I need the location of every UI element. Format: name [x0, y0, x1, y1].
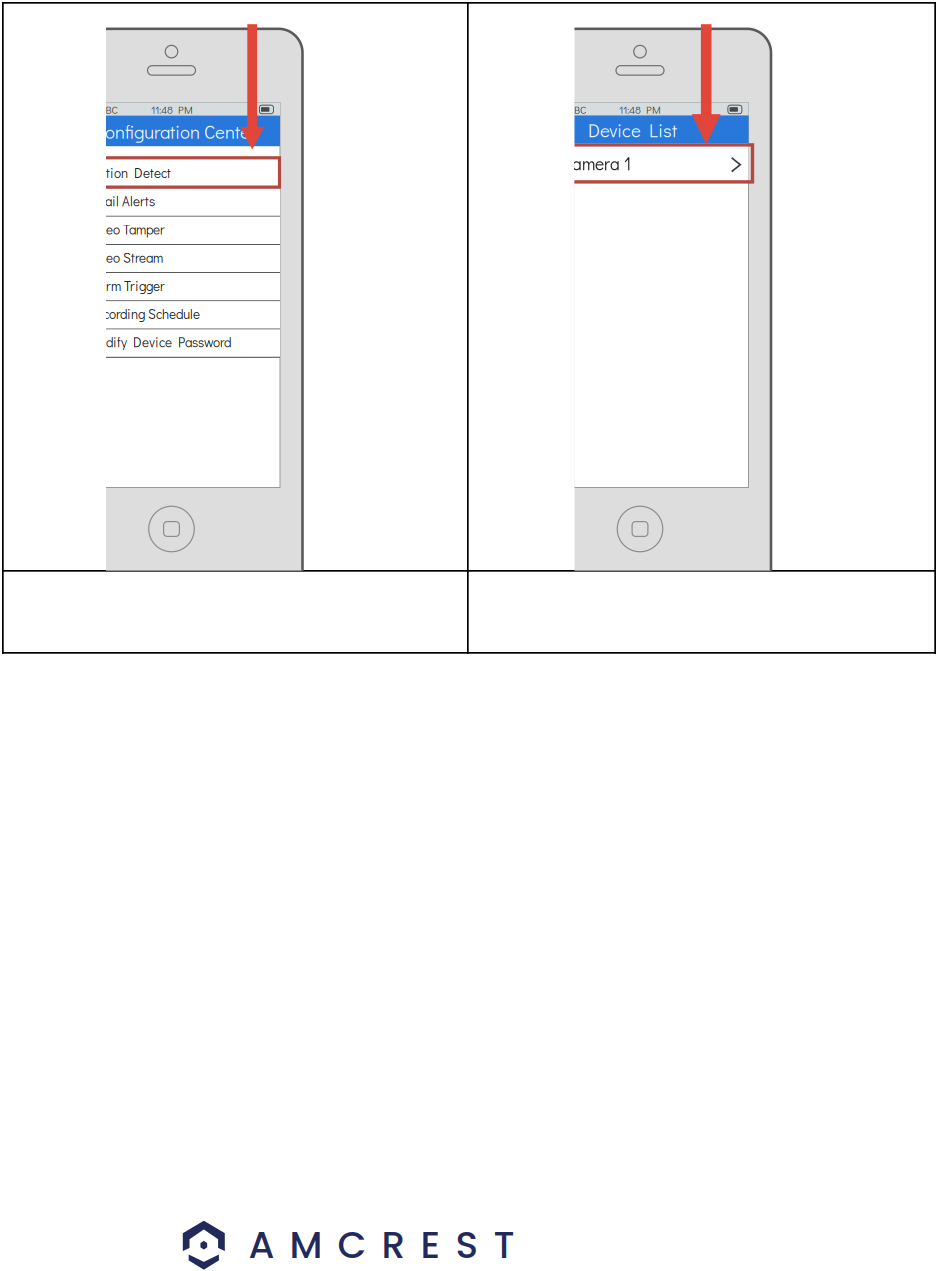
button[interactable]: Camera 1	[0, 0, 938, 1271]
staticText: 11:48 PM	[619, 103, 661, 117]
staticText: Email Alerts	[88, 192, 155, 210]
button[interactable]: Video Stream	[0, 0, 938, 1271]
staticText: ABC	[99, 103, 117, 117]
button[interactable]: Modify Device Password	[0, 0, 938, 1271]
staticText: ABC	[568, 103, 586, 117]
button[interactable]: Email Alerts	[0, 0, 938, 1271]
button[interactable]: Alarm Trigger	[0, 0, 938, 1271]
staticText: Device List	[588, 118, 677, 142]
staticText: Configuration Center	[94, 119, 256, 144]
staticText: Recording Schedule	[88, 305, 200, 323]
staticText: Video Tamper	[88, 221, 165, 238]
button[interactable]: Motion Detect	[0, 0, 938, 1271]
staticText: Alarm Trigger	[88, 277, 165, 294]
staticText: Motion Detect	[88, 164, 171, 182]
button[interactable]: Video Tamper	[0, 0, 938, 1271]
staticText: Camera 1	[562, 152, 631, 175]
staticText: 11:48 PM	[151, 103, 193, 117]
staticText: Modify Device Password	[88, 333, 231, 351]
staticText: AMCREST	[248, 1219, 514, 1271]
staticText: Video Stream	[88, 249, 163, 266]
button[interactable]: Recording Schedule	[0, 0, 938, 1271]
